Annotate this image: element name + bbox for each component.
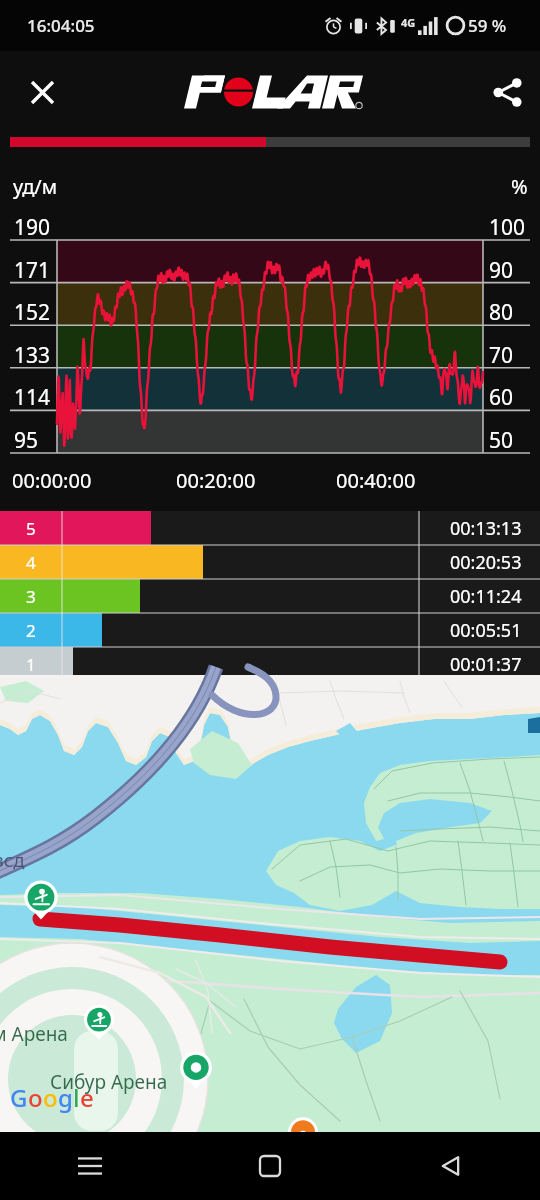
staticText: 114 xyxy=(14,383,51,412)
staticText: 5 xyxy=(26,517,36,540)
staticText: 152 xyxy=(14,298,51,327)
button[interactable]: 1 xyxy=(0,647,540,681)
staticText: e xyxy=(80,1081,94,1114)
staticText: 70 xyxy=(489,341,514,370)
staticText: 16:04:05 xyxy=(27,14,95,37)
staticText: o xyxy=(43,1081,58,1114)
staticText: 00:01:37 xyxy=(450,652,522,677)
staticText: o xyxy=(28,1081,43,1114)
button[interactable]: Route map xyxy=(0,681,540,1132)
staticText: 95 xyxy=(14,426,39,455)
button[interactable]: Back xyxy=(360,1132,540,1200)
staticText: уд/м xyxy=(13,173,58,200)
staticText: 00:05:51 xyxy=(450,618,522,643)
button[interactable]: Home xyxy=(180,1132,360,1200)
staticText: м Арена xyxy=(0,1021,68,1047)
staticText: 1 xyxy=(26,653,36,676)
staticText: % xyxy=(511,173,528,200)
staticText: 4G xyxy=(401,15,416,30)
button[interactable]: 3 xyxy=(0,579,540,613)
staticText: 59 % xyxy=(468,14,507,37)
staticText: 00:11:24 xyxy=(450,584,522,609)
staticText: ЗСД xyxy=(0,851,25,871)
button[interactable]: 5 xyxy=(0,511,540,545)
button[interactable]: Share xyxy=(483,68,531,116)
staticText: 00:20:00 xyxy=(176,467,256,494)
staticText: 133 xyxy=(14,341,51,370)
staticText: 171 xyxy=(14,256,51,285)
button[interactable]: Recent apps xyxy=(0,1132,180,1200)
staticText: 190 xyxy=(14,213,51,242)
staticText: l xyxy=(73,1081,80,1114)
staticText: 00:20:53 xyxy=(450,550,522,575)
staticText: 60 xyxy=(489,383,514,412)
staticText: 100 xyxy=(489,213,526,242)
staticText: g xyxy=(58,1081,73,1114)
staticText: 3 xyxy=(26,585,36,608)
staticText: 90 xyxy=(489,256,514,285)
staticText: 2 xyxy=(26,619,36,642)
staticText: 80 xyxy=(489,298,514,327)
staticText: 4 xyxy=(26,551,36,574)
button[interactable]: Close xyxy=(18,68,66,116)
staticText: G xyxy=(10,1081,28,1114)
button[interactable]: 4 xyxy=(0,545,540,579)
staticText: 00:40:00 xyxy=(336,467,416,494)
staticText: Сибур Арена xyxy=(50,1069,168,1095)
staticText: 00:00:00 xyxy=(12,467,92,494)
staticText: 00:13:13 xyxy=(450,516,522,541)
staticText: 50 xyxy=(489,426,514,455)
button[interactable]: 2 xyxy=(0,613,540,647)
